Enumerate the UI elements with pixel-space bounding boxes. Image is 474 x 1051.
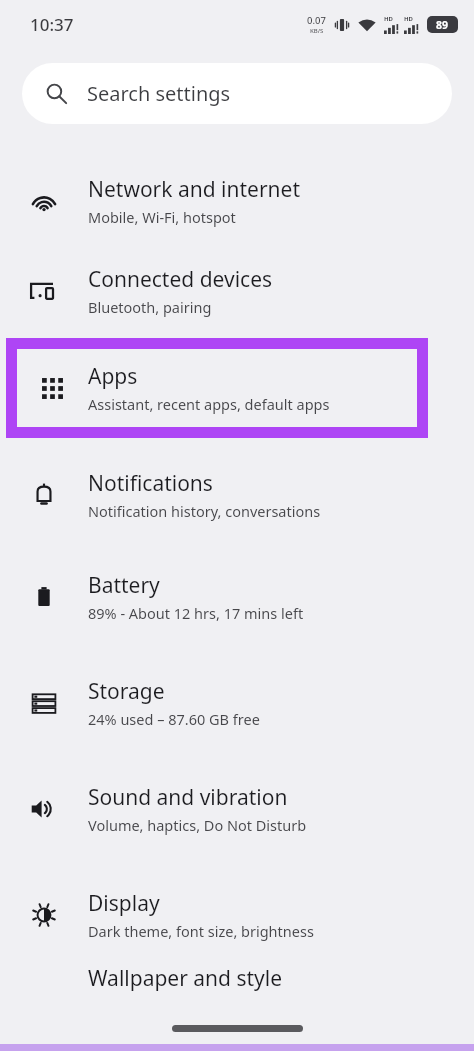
staticText: Connected devices xyxy=(88,265,273,294)
staticText: Notification history, conversations xyxy=(88,501,321,521)
staticText: 10:37 xyxy=(30,13,74,36)
staticText: Wallpaper and style xyxy=(88,968,283,993)
button[interactable]: Search settings xyxy=(22,63,452,124)
button[interactable]: Sound and vibration xyxy=(0,756,474,862)
button[interactable]: Network and internet xyxy=(0,152,474,250)
staticText: Dark theme, font size, brightness xyxy=(88,921,314,941)
staticText: Assistant, recent apps, default apps xyxy=(88,394,330,414)
staticText: Battery xyxy=(88,571,160,600)
staticText: Bluetooth, pairing xyxy=(88,297,212,317)
staticText: HD xyxy=(404,15,413,23)
staticText: Search settings xyxy=(87,80,231,107)
staticText: Mobile, Wi-Fi, hotspot xyxy=(88,207,236,227)
button[interactable]: Notifications xyxy=(0,446,474,544)
staticText: 0.07 xyxy=(307,14,326,27)
staticText: Apps xyxy=(88,362,138,391)
staticText: 89 xyxy=(436,18,449,32)
staticText: Sound and vibration xyxy=(88,783,288,812)
staticText: Volume, haptics, Do Not Disturb xyxy=(88,815,307,835)
button[interactable]: Storage xyxy=(0,650,474,756)
staticText: Display xyxy=(88,889,160,918)
button[interactable]: Apps xyxy=(17,349,417,427)
button[interactable]: Connected devices xyxy=(0,250,474,332)
staticText: KB/S xyxy=(310,27,324,35)
other: Home gesture bar xyxy=(172,1025,303,1032)
staticText: 89% - About 12 hrs, 17 mins left xyxy=(88,603,304,623)
button[interactable]: Display xyxy=(0,862,474,968)
staticText: HD xyxy=(384,15,393,23)
button[interactable]: Battery xyxy=(0,544,474,650)
staticText: 24% used – 87.60 GB free xyxy=(88,709,260,729)
staticText: Notifications xyxy=(88,469,213,498)
staticText: Storage xyxy=(88,677,165,706)
staticText: Network and internet xyxy=(88,175,300,204)
